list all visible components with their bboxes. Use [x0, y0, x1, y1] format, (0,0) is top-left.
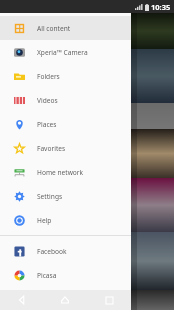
staticText: Folders	[37, 72, 60, 81]
button[interactable]: Videos	[0, 88, 131, 112]
button[interactable]: Folders	[0, 64, 131, 88]
button[interactable]: Flickr	[0, 287, 131, 310]
staticText: Settings	[37, 192, 63, 201]
button[interactable]: Favorites	[0, 136, 131, 160]
button[interactable]: All content	[0, 16, 131, 40]
button[interactable]: Xperia™ Camera	[0, 40, 131, 64]
staticText: Facebook	[37, 247, 67, 256]
staticText: Videos	[37, 96, 58, 105]
button[interactable]: Places	[0, 112, 131, 136]
button[interactable]: Facebook	[0, 239, 131, 263]
staticText: Xperia™ Camera	[37, 48, 88, 57]
button[interactable]: Home network	[0, 160, 131, 184]
button[interactable]: Picasa	[0, 263, 131, 287]
staticText: Home network	[37, 168, 84, 177]
staticText: Places	[37, 120, 57, 129]
staticText: Help	[37, 216, 52, 225]
staticText: Favorites	[37, 144, 66, 153]
staticText: All content	[37, 24, 71, 33]
button[interactable]: Help	[0, 208, 131, 232]
staticText: Picasa	[37, 271, 57, 280]
staticText: 10:35	[151, 2, 171, 12]
button[interactable]: Settings	[0, 184, 131, 208]
